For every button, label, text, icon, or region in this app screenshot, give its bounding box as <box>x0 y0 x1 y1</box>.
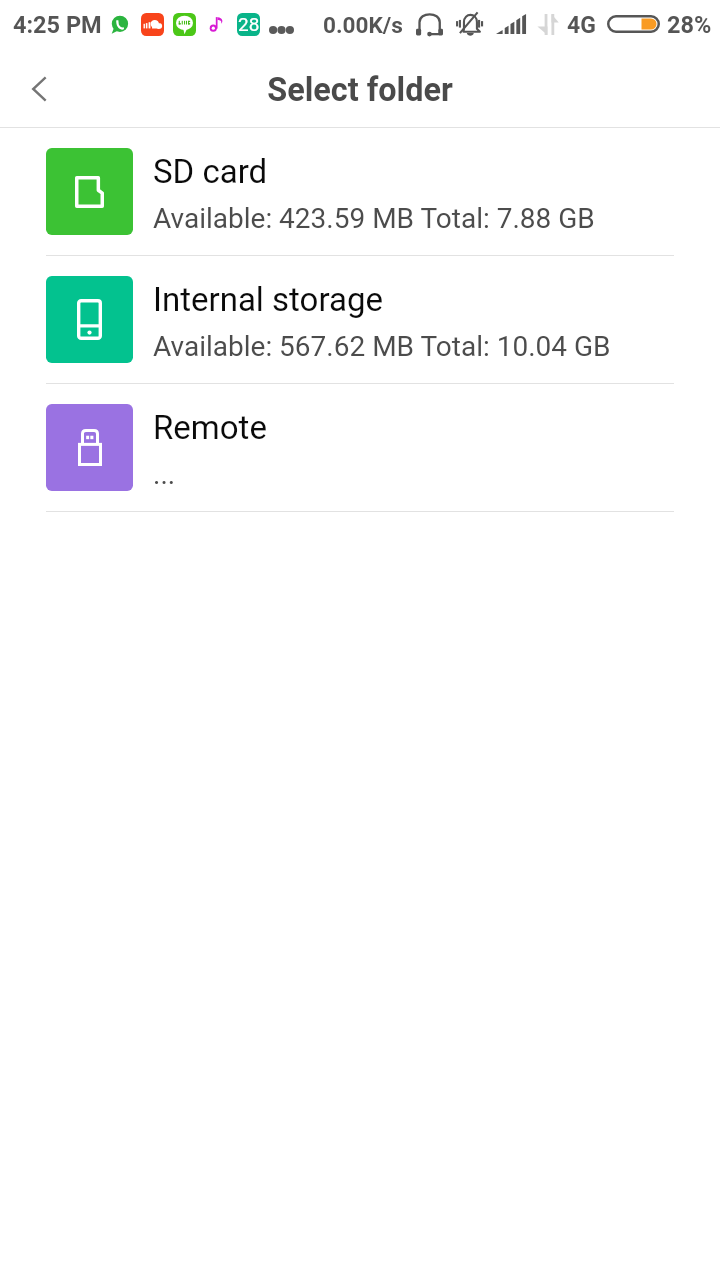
staticText: 28 <box>238 13 260 35</box>
staticText: Available: 423.59 MB Total: 7.88 GB <box>153 202 595 235</box>
staticText: Internal storage <box>153 280 383 319</box>
staticText: 28% <box>667 11 712 39</box>
staticText: Select folder <box>267 71 453 109</box>
staticText: 4:25 PM <box>13 11 102 39</box>
button[interactable]: Remote <box>0 384 720 511</box>
button[interactable]: Back <box>0 48 78 127</box>
staticText: Remote <box>153 408 267 447</box>
staticText: 0.00K/s <box>323 12 403 38</box>
staticText: SD card <box>153 152 268 191</box>
staticText: ... <box>153 458 176 491</box>
staticText: 4G <box>567 12 596 39</box>
button[interactable]: SD card <box>0 128 720 255</box>
button[interactable]: Internal storage <box>0 256 720 383</box>
staticText: Available: 567.62 MB Total: 10.04 GB <box>153 330 611 363</box>
